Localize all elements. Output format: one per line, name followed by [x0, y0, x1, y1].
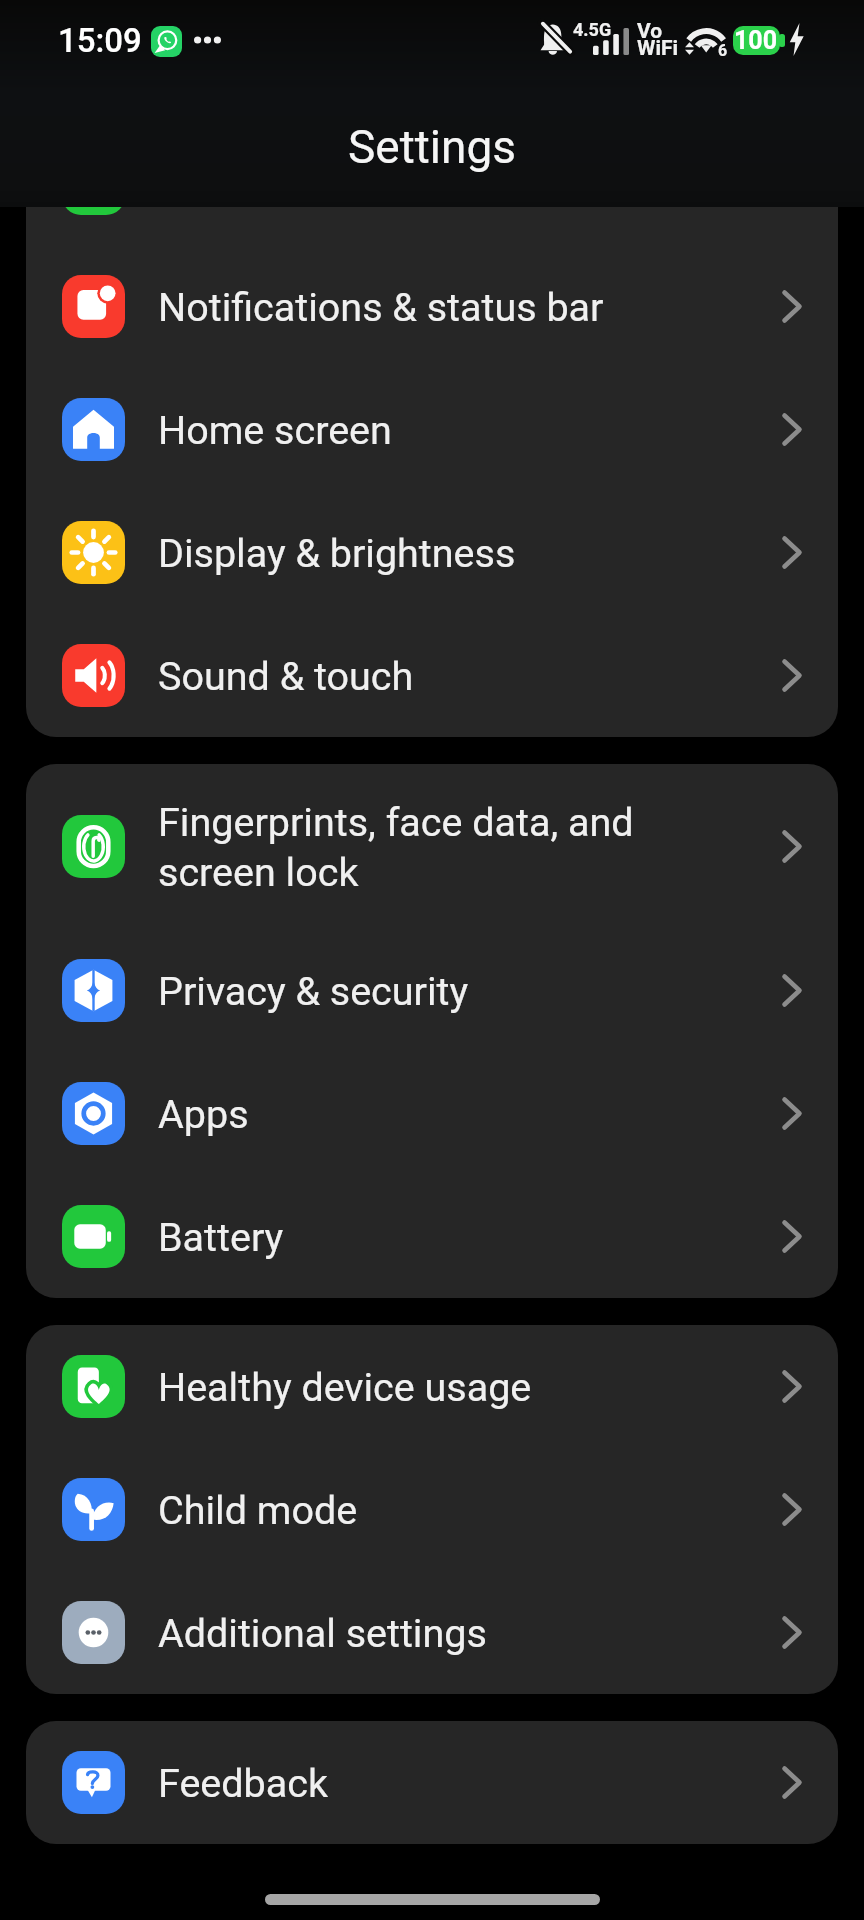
button[interactable]: Notifications & status bar: [26, 245, 838, 368]
button[interactable]: Privacy & security: [26, 929, 838, 1052]
button[interactable]: Fingerprints, face data, and screen lock: [26, 764, 838, 929]
staticText: Connections & sharing: [158, 161, 759, 207]
staticText: Vo: [637, 19, 663, 44]
button[interactable]: Child mode: [26, 1448, 838, 1571]
staticText: Battery: [158, 1214, 759, 1260]
button[interactable]: Apps: [26, 1052, 838, 1175]
button[interactable]: Connections & sharing: [26, 122, 838, 245]
staticText: Feedback: [158, 1760, 759, 1806]
button[interactable]: Feedback: [26, 1721, 838, 1844]
staticText: Notifications & status bar: [158, 284, 759, 330]
staticText: Privacy & security: [158, 968, 759, 1014]
button[interactable]: Additional settings: [26, 1571, 838, 1694]
button[interactable]: Sound & touch: [26, 614, 838, 737]
staticText: 4.5G: [573, 19, 612, 40]
button[interactable]: Home screen: [26, 368, 838, 491]
staticText: Additional settings: [158, 1610, 759, 1656]
button[interactable]: Battery: [26, 1175, 838, 1298]
staticText: 100: [734, 26, 778, 55]
staticText: Child mode: [158, 1487, 759, 1533]
staticText: WiFi: [637, 36, 679, 61]
staticText: 15:09: [58, 21, 142, 60]
staticText: Apps: [158, 1091, 759, 1137]
staticText: Settings: [348, 120, 516, 174]
staticText: 6: [718, 41, 728, 60]
staticText: Healthy device usage: [158, 1364, 759, 1410]
staticText: Display & brightness: [158, 530, 759, 576]
button[interactable]: Display & brightness: [26, 491, 838, 614]
staticText: Home screen: [158, 407, 759, 453]
staticText: Sound & touch: [158, 653, 759, 699]
button[interactable]: Healthy device usage: [26, 1325, 838, 1448]
staticText: Fingerprints, face data, and screen lock: [158, 799, 759, 895]
